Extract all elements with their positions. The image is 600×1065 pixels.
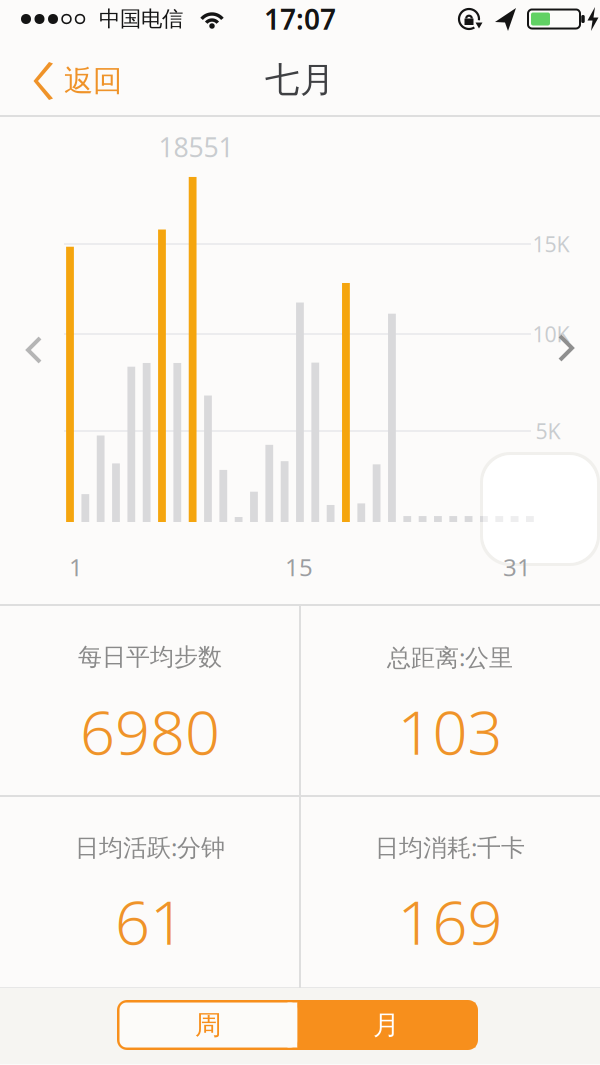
staticText: 日均活跃:分钟	[75, 831, 225, 863]
staticText: 17:07	[264, 0, 336, 38]
staticText: 10K	[532, 320, 569, 348]
staticText: 6980	[80, 690, 220, 772]
staticText: 1	[69, 551, 83, 583]
staticText: 日均消耗:千卡	[375, 831, 525, 863]
staticText: 中国电信	[99, 6, 183, 32]
button[interactable]	[26, 336, 42, 364]
staticText: 月	[373, 1009, 400, 1041]
staticText: 总距离:公里	[387, 641, 513, 673]
staticText: 5K	[535, 417, 560, 445]
staticText: 169	[397, 880, 502, 962]
button[interactable]	[558, 334, 574, 362]
staticText: 15	[285, 551, 313, 583]
button[interactable]: 月	[297, 1002, 475, 1047]
staticText: 18551	[158, 129, 233, 165]
staticText: 15K	[532, 230, 569, 258]
staticText: 周	[195, 1009, 222, 1041]
staticText: 31	[503, 551, 531, 583]
button[interactable]	[480, 452, 600, 566]
button[interactable]: 周	[119, 1002, 297, 1047]
button[interactable]: 返回	[33, 54, 173, 108]
staticText: 61	[115, 880, 185, 962]
staticText: 103	[397, 690, 502, 772]
staticText: 每日平均步数	[78, 642, 222, 672]
staticText: 七月	[265, 59, 335, 101]
staticText: 返回	[64, 63, 122, 99]
